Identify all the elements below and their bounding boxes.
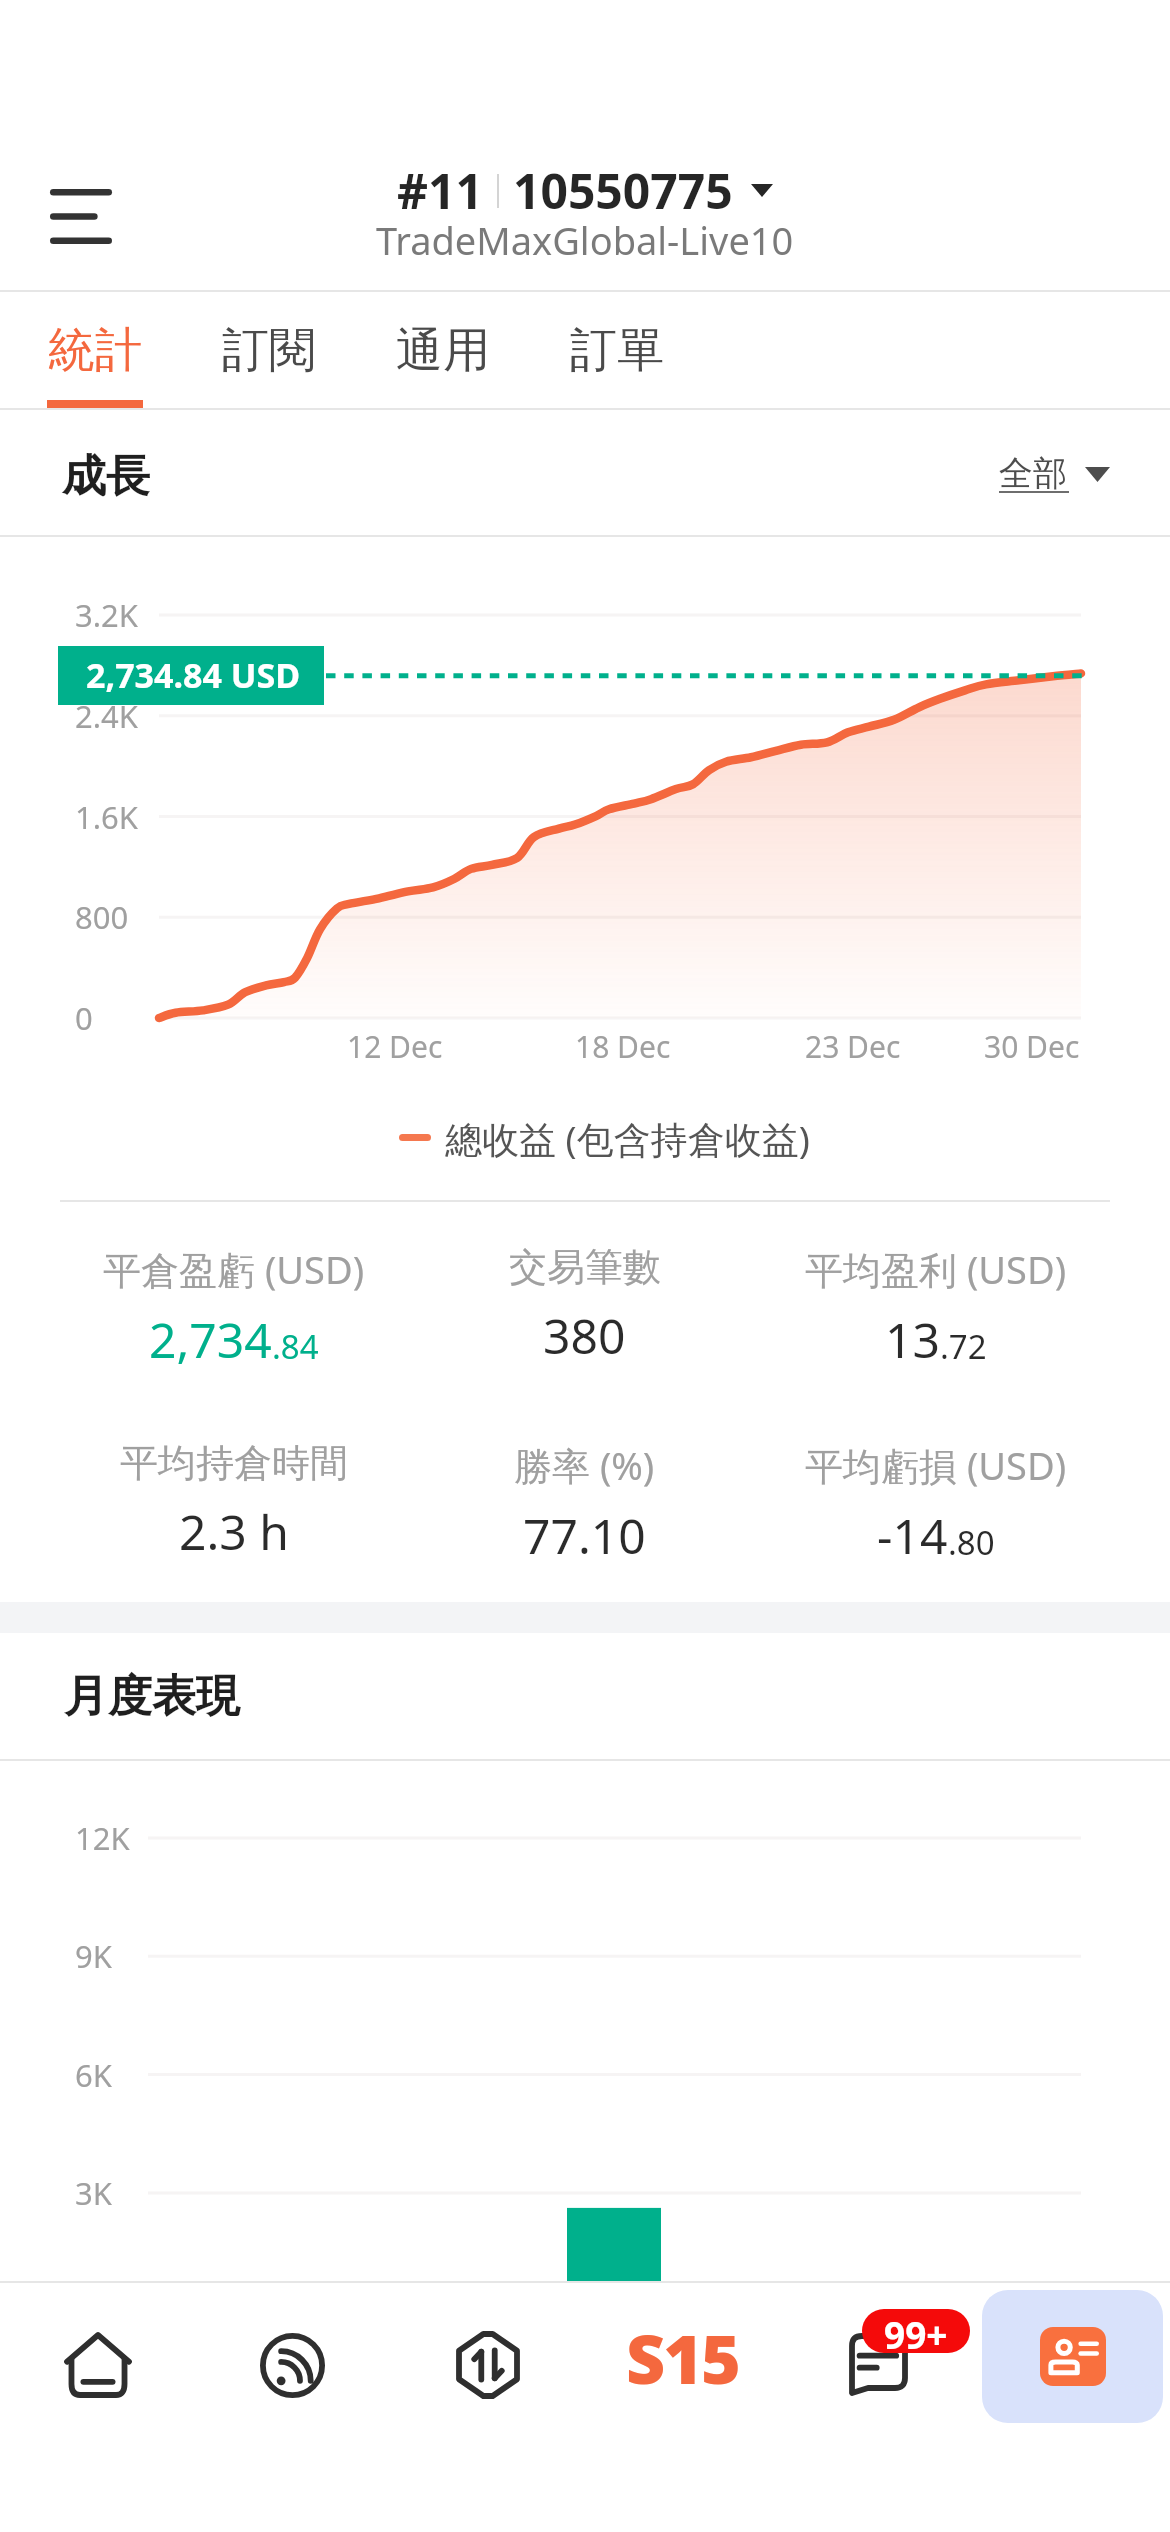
staticText: TradeMaxGlobal-Live10	[376, 214, 794, 266]
staticText: 2,734	[149, 1307, 272, 1372]
button[interactable]: #11	[364, 152, 806, 281]
button[interactable]: Messages	[780, 2283, 975, 2447]
staticText: 12K	[75, 1817, 130, 1859]
staticText: 平均盈利 (USD)	[805, 1243, 1067, 1295]
staticText: 1.6K	[75, 796, 138, 838]
staticText: 10550775	[513, 158, 733, 223]
staticText: .72	[940, 1324, 987, 1369]
staticText: 月度表現	[64, 1669, 240, 1724]
staticText: 平均持倉時間	[120, 1439, 348, 1487]
staticText: 13	[885, 1307, 940, 1372]
staticText: 全部	[999, 452, 1067, 495]
button[interactable]: Menu	[23, 158, 139, 274]
button[interactable]: Profile	[982, 2290, 1163, 2423]
staticText: 訂單	[570, 321, 664, 380]
staticText: 平倉盈虧 (USD)	[103, 1243, 365, 1295]
staticText: 99+	[884, 2309, 948, 2353]
button[interactable]: 全部	[989, 449, 1110, 497]
staticText: 380	[543, 1303, 626, 1368]
staticText: 77.10	[523, 1503, 646, 1568]
button[interactable]: 訂閱	[182, 292, 356, 408]
staticText: #11	[397, 158, 483, 223]
staticText: 18 Dec	[575, 1026, 671, 1067]
button[interactable]: S15	[585, 2283, 780, 2447]
staticText: S15	[626, 2311, 739, 2404]
staticText: 3K	[75, 2172, 112, 2214]
staticText: 3.2K	[75, 594, 138, 636]
staticText: 2.4K	[75, 695, 138, 737]
button[interactable]: 訂單	[530, 292, 704, 408]
staticText: 總收益 (包含持倉收益)	[445, 1113, 810, 1164]
staticText: 交易筆數	[509, 1243, 661, 1291]
staticText: 勝率 (%)	[514, 1439, 655, 1491]
staticText: 9K	[75, 1935, 112, 1977]
staticText: 800	[75, 896, 129, 938]
button[interactable]: Trade	[390, 2283, 585, 2447]
staticText: 12 Dec	[347, 1026, 443, 1067]
staticText: 成長	[62, 449, 150, 504]
button[interactable]: 統計	[8, 292, 182, 408]
staticText: 統計	[48, 321, 142, 380]
staticText: 23 Dec	[805, 1026, 901, 1067]
staticText: 訂閱	[222, 321, 316, 380]
staticText: -14	[877, 1503, 948, 1568]
staticText: 30 Dec	[984, 1026, 1080, 1067]
staticText: .80	[948, 1520, 995, 1565]
staticText: 平均虧損 (USD)	[805, 1439, 1067, 1491]
button[interactable]: Home	[0, 2283, 195, 2447]
button[interactable]: 通用	[356, 292, 530, 408]
staticText: 通用	[396, 321, 490, 380]
staticText: 2,734.84 USD	[86, 652, 301, 698]
staticText: .84	[272, 1324, 319, 1369]
button[interactable]: Signals	[195, 2283, 390, 2447]
staticText: 2.3 h	[179, 1499, 289, 1564]
staticText: 6K	[75, 2054, 112, 2096]
staticText: 0	[75, 997, 93, 1039]
